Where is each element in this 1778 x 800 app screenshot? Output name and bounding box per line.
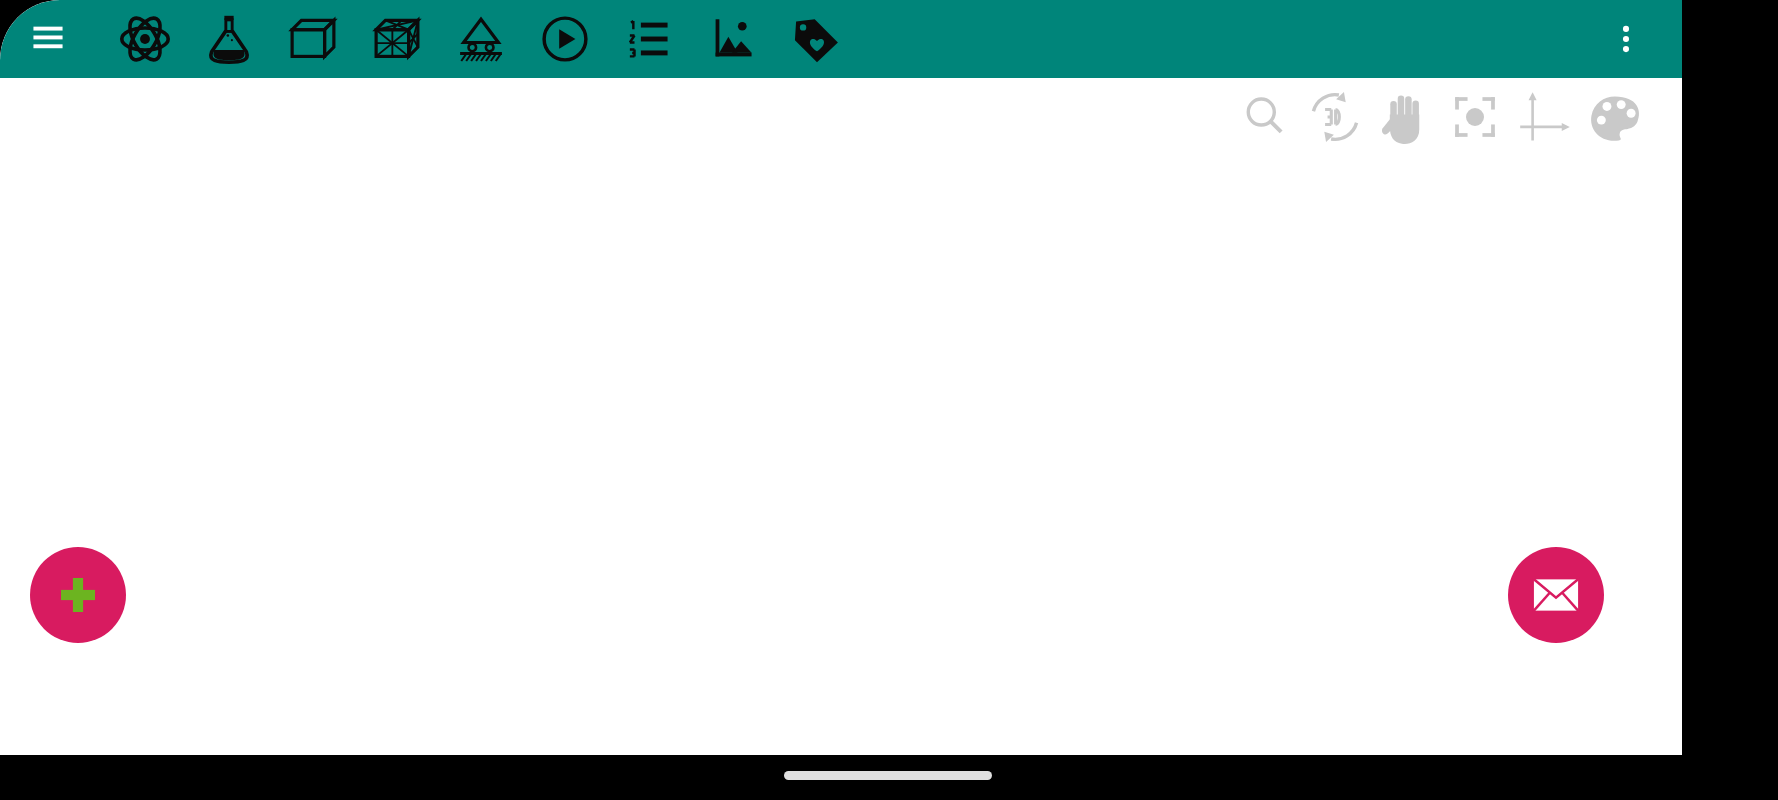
button[interactable]: Atom <box>116 10 174 68</box>
button[interactable]: List <box>620 10 678 68</box>
button[interactable]: Focus <box>1444 86 1506 148</box>
button[interactable]: Mail <box>1508 547 1604 643</box>
button[interactable]: Pan <box>1374 86 1436 148</box>
button[interactable]: Flask <box>200 10 258 68</box>
button[interactable]: Solid <box>284 10 342 68</box>
button[interactable]: Image <box>704 10 762 68</box>
button[interactable]: Support <box>452 10 510 68</box>
button[interactable]: Rotate 3D <box>1304 86 1366 148</box>
button[interactable]: Mesh <box>368 10 426 68</box>
button[interactable]: Menu <box>22 13 74 65</box>
button[interactable]: Zoom <box>1234 86 1296 148</box>
button[interactable]: More options <box>1588 1 1664 77</box>
button[interactable]: Tag <box>788 10 846 68</box>
button[interactable]: Axes <box>1514 86 1576 148</box>
button[interactable]: Play <box>536 10 594 68</box>
button[interactable]: Palette <box>1584 86 1646 148</box>
button[interactable]: Add <box>30 547 126 643</box>
